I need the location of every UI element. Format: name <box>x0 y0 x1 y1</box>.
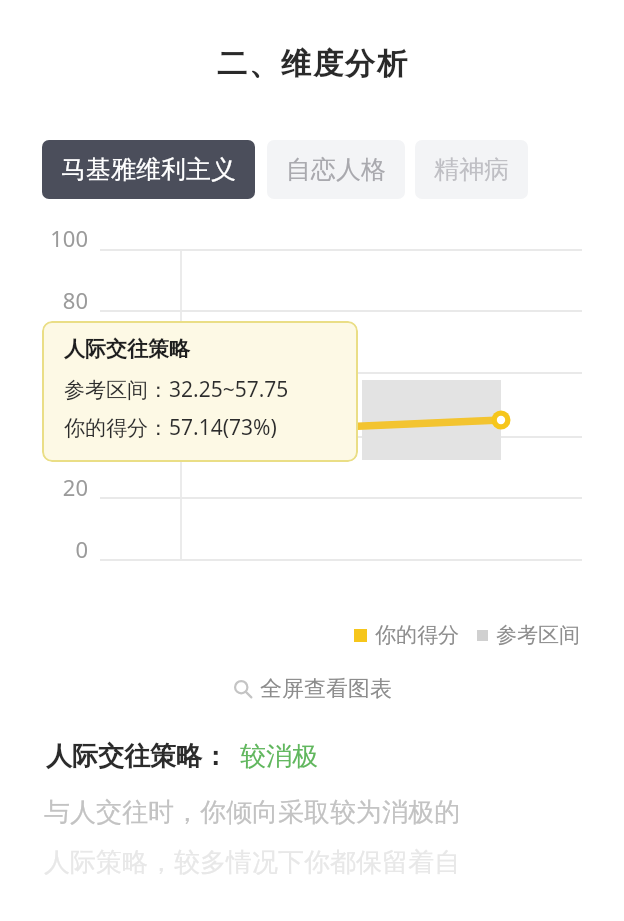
staticText: 20 <box>62 472 88 502</box>
staticText: 全屏查看图表 <box>260 675 392 703</box>
staticText: 与人交往时，你倾向采取较为消极的 <box>44 796 460 829</box>
staticText: 0 <box>75 534 88 564</box>
staticText: 人际交往策略 <box>64 336 190 362</box>
staticText: 较消极 <box>240 740 318 773</box>
staticText: 人际交往策略： <box>46 740 228 773</box>
button[interactable]: 马基雅维利主义 <box>42 140 255 199</box>
staticText: 80 <box>62 285 88 315</box>
staticText: 精神病 <box>434 154 509 185</box>
button[interactable]: 精神病 <box>415 140 528 199</box>
staticText: 参考区间：32.25~57.75 <box>64 375 289 404</box>
staticText: 参考区间 <box>496 622 580 648</box>
button[interactable]: 自恋人格 <box>267 140 405 199</box>
staticText: 马基雅维利主义 <box>61 154 236 185</box>
staticText: 你的得分 <box>375 622 459 648</box>
staticText: 二、维度分析 <box>216 45 408 83</box>
staticText: 自恋人格 <box>286 154 386 185</box>
other: View chart fullscreen <box>232 678 254 700</box>
staticText: 100 <box>50 223 88 253</box>
staticText: 你的得分：57.14(73%) <box>64 413 277 442</box>
button[interactable]: View chart fullscreen <box>0 675 624 703</box>
staticText: 人际策略，较多情况下你都保留着自 <box>44 846 460 879</box>
